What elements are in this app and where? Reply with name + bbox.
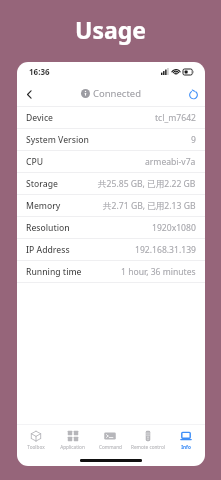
button[interactable]: CPU (17, 151, 205, 172)
button[interactable]: Refresh (181, 82, 205, 106)
staticText: 1 hour, 36 minutes (121, 266, 196, 278)
staticText: 16:36 (29, 66, 50, 77)
staticText: Command (99, 444, 122, 450)
staticText: 共2.71 GB, 已用2.13 GB (103, 200, 196, 212)
staticText: 192.168.31.139 (135, 244, 196, 256)
button[interactable]: Resolution (17, 217, 205, 238)
staticText: Memory (26, 200, 61, 212)
button[interactable]: Memory (17, 195, 205, 216)
staticText: Connected (93, 87, 142, 100)
button[interactable]: Remote control (129, 425, 167, 455)
button[interactable]: System Version (17, 129, 205, 150)
staticText: Info (181, 444, 191, 450)
staticText: tcl_m7642 (155, 112, 196, 124)
staticText: Usage (75, 14, 146, 45)
button[interactable]: Running time (17, 261, 205, 282)
button[interactable]: Command (91, 425, 129, 455)
staticText: System Version (26, 134, 89, 146)
staticText: Remote control (131, 444, 165, 450)
button[interactable]: Device (17, 107, 205, 128)
staticText: CPU (26, 156, 44, 168)
staticText: IP Address (26, 244, 70, 256)
staticText: armeabi-v7a (145, 156, 196, 168)
staticText: Application (60, 444, 85, 450)
button[interactable]: Back (17, 82, 41, 106)
button[interactable]: Storage (17, 173, 205, 194)
staticText: 共25.85 GB, 已用2.22 GB (98, 178, 196, 190)
staticText: Running time (26, 266, 82, 278)
staticText: Toolbox (27, 444, 45, 450)
button[interactable]: Application (54, 425, 91, 455)
staticText: 9 (191, 134, 196, 146)
staticText: 1920x1080 (152, 222, 196, 234)
button[interactable]: Toolbox (17, 425, 54, 455)
button[interactable]: IP Address (17, 239, 205, 260)
staticText: Storage (26, 178, 58, 190)
staticText: Resolution (26, 222, 70, 234)
button[interactable]: Info (167, 425, 205, 455)
staticText: Device (26, 112, 54, 124)
